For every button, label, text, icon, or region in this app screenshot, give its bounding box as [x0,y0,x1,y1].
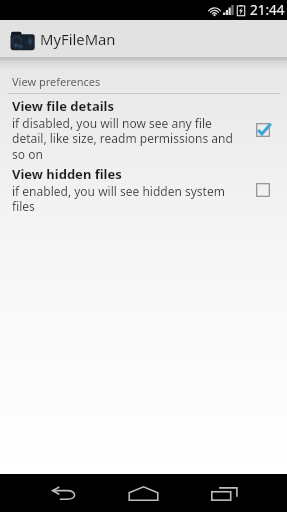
staticText: if enabled, you will see hidden system f… [12,183,243,215]
button[interactable]: View hidden files [0,165,287,215]
staticText: MyFileMan [40,29,116,49]
button[interactable]: Back [24,474,103,512]
button[interactable]: Recent apps [185,474,264,512]
staticText: 21:44 [250,1,285,19]
button[interactable]: Checked [253,120,273,140]
staticText: View file details [12,97,114,115]
staticText: View preferences [12,74,101,89]
staticText: if disabled, you will now see any file d… [12,115,243,163]
button[interactable]: MyFileMan [0,20,287,57]
staticText: View hidden files [12,165,122,183]
button[interactable]: Home [104,474,183,512]
button[interactable]: View file details [0,97,287,163]
button[interactable]: Unchecked [253,180,273,200]
